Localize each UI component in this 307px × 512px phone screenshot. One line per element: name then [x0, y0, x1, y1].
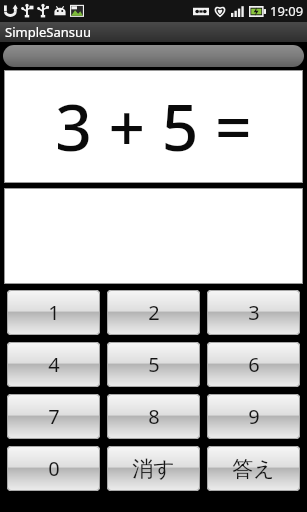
button[interactable]: 0 — [7, 446, 100, 491]
button[interactable] — [4, 188, 303, 284]
staticText: 3 + 5 = — [55, 83, 252, 170]
staticText: 1 — [48, 299, 60, 326]
button[interactable]: 3 — [207, 290, 300, 335]
staticText: 9 — [248, 403, 260, 430]
staticText: 3 — [248, 299, 260, 326]
button[interactable]: 4 — [7, 342, 100, 387]
staticText: 6 — [248, 351, 260, 378]
button[interactable]: 7 — [7, 394, 100, 439]
staticText: 2 — [148, 299, 160, 326]
button[interactable]: 答え — [207, 446, 300, 491]
staticText: 消す — [132, 456, 175, 482]
staticText: 8 — [148, 403, 160, 430]
button[interactable]: 5 — [107, 342, 200, 387]
staticText: 7 — [48, 403, 60, 430]
staticText: 4 — [48, 351, 60, 378]
button[interactable]: 9 — [207, 394, 300, 439]
staticText: 答え — [232, 456, 275, 482]
button[interactable]: 消す — [107, 446, 200, 491]
button[interactable]: 8 — [107, 394, 200, 439]
button[interactable]: 1 — [7, 290, 100, 335]
button[interactable]: 6 — [207, 342, 300, 387]
staticText: 5 — [148, 351, 160, 378]
staticText: 19:09 — [270, 2, 304, 20]
button[interactable]: 2 — [107, 290, 200, 335]
staticText: 0 — [48, 455, 60, 482]
staticText: SimpleSansuu — [5, 23, 92, 41]
